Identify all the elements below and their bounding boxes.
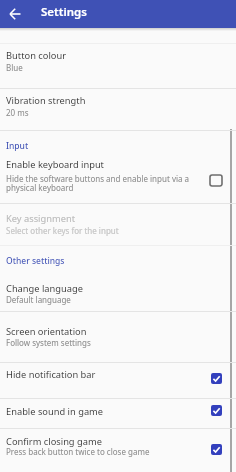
staticText: 20 ms [6,107,29,118]
staticText: Confirm closing game [6,435,102,448]
button[interactable]: Hide notification bar [0,362,236,398]
staticText: Vibration strength [6,94,86,107]
staticText: Key assignment [6,212,75,225]
staticText: Select other keys for the input [6,225,119,236]
button[interactable] [4,4,24,24]
staticText: Press back button twice to close game [6,446,150,457]
staticText: Follow system settings [6,337,91,348]
staticText: Settings [41,4,87,20]
button[interactable]: Button colour [0,43,236,88]
staticText: Hide notification bar [6,368,96,381]
staticText: Enable keyboard input [6,158,104,171]
staticText: Hide the software buttons and enable inp… [6,173,190,184]
staticText: Enable sound in game [6,405,104,418]
button[interactable]: Confirm closing game [0,428,236,472]
staticText: Input [6,140,29,152]
button[interactable]: Vibration strength [0,88,236,130]
staticText: Screen orientation [6,325,87,338]
button[interactable]: Change language [0,272,236,311]
staticText: Other settings [6,255,65,267]
staticText: Default language [6,294,71,305]
button[interactable]: Screen orientation [0,311,236,362]
button[interactable]: Enable keyboard input [0,152,236,203]
staticText: Button colour [6,49,66,62]
staticText: Change language [6,282,83,295]
button[interactable]: Key assignment [0,203,236,245]
staticText: Blue [6,62,23,73]
staticText: physical keyboard [6,182,74,193]
button[interactable]: Enable sound in game [0,398,236,428]
